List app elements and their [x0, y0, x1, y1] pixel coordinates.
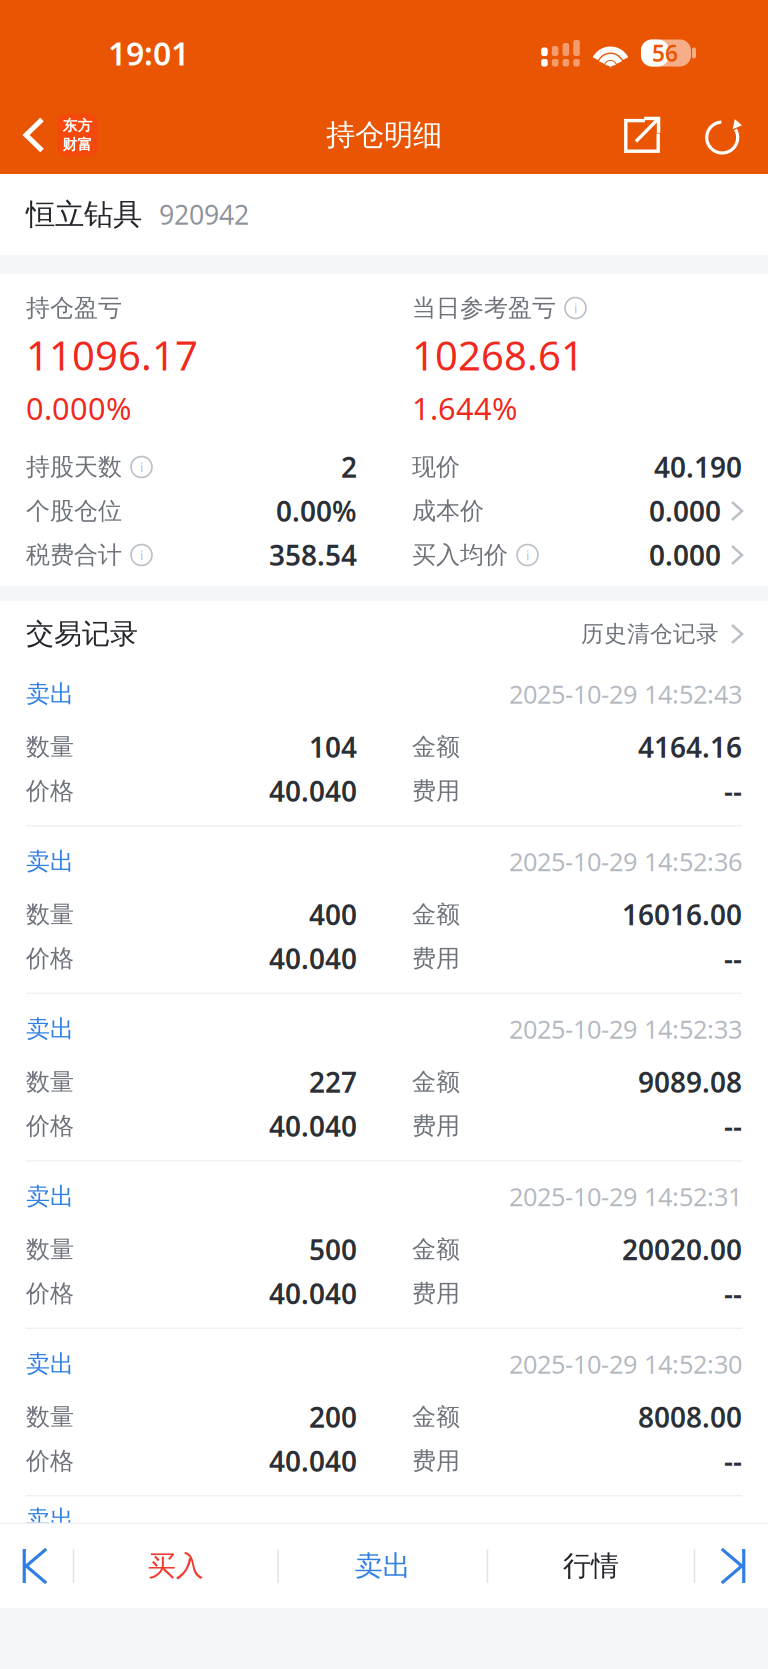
- button[interactable]: 上一只: [0, 1524, 73, 1608]
- staticText: --: [724, 772, 742, 810]
- staticText: 价格: [26, 944, 74, 973]
- staticText: 920942: [159, 197, 249, 232]
- staticText: 8008.00: [638, 1398, 742, 1436]
- staticText: 价格: [26, 1446, 74, 1476]
- staticText: --: [724, 940, 742, 977]
- staticText: 金额: [412, 732, 460, 762]
- staticText: 持股天数: [26, 452, 122, 482]
- staticText: 税费合计: [26, 540, 122, 570]
- button[interactable]: 分享: [607, 96, 677, 174]
- staticText: 2025-10-29 14:52:43: [509, 677, 742, 711]
- button[interactable]: 下一只: [695, 1524, 768, 1608]
- staticText: 金额: [412, 900, 460, 929]
- staticText: 500: [309, 1231, 357, 1268]
- staticText: 11096.17: [26, 328, 198, 381]
- staticText: 数量: [26, 1235, 74, 1264]
- button[interactable]: 买入: [74, 1524, 277, 1608]
- staticText: 0.00%: [276, 492, 357, 530]
- staticText: 当日参考盈亏: [412, 293, 556, 323]
- staticText: 卖出: [26, 1014, 74, 1044]
- staticText: 40.040: [269, 772, 357, 810]
- staticText: 2025-10-29 14:52:36: [509, 845, 742, 878]
- staticText: 数量: [26, 1067, 74, 1097]
- staticText: 227: [309, 1063, 357, 1101]
- staticText: 358.54: [269, 536, 357, 574]
- staticText: 0.000: [649, 536, 721, 574]
- staticText: 费用: [412, 1446, 460, 1476]
- staticText: 2025-10-29 14:52:33: [509, 1012, 742, 1046]
- staticText: 0.000: [649, 492, 721, 530]
- staticText: 东方: [62, 116, 92, 134]
- staticText: 费用: [412, 1111, 460, 1141]
- staticText: 行情: [563, 1549, 619, 1583]
- staticText: 历史清仓记录: [581, 620, 719, 648]
- staticText: 成本价: [412, 496, 484, 526]
- staticText: 4164.16: [638, 728, 742, 766]
- staticText: 卖出: [26, 679, 74, 709]
- staticText: 200: [309, 1398, 357, 1436]
- staticText: --: [724, 1275, 742, 1312]
- staticText: 56: [652, 38, 678, 68]
- staticText: 40.040: [269, 1107, 357, 1145]
- staticText: 交易记录: [26, 617, 138, 651]
- button[interactable]: 卖出: [279, 1524, 487, 1608]
- staticText: 恒立钻具: [26, 196, 142, 232]
- staticText: 价格: [26, 776, 74, 806]
- staticText: 40.190: [654, 448, 742, 486]
- staticText: 数量: [26, 1402, 74, 1432]
- staticText: 16016.00: [622, 896, 742, 933]
- staticText: 104: [309, 728, 357, 766]
- button[interactable]: 返回 东方财富: [0, 96, 110, 174]
- staticText: 19:01: [108, 32, 189, 74]
- staticText: 卖出: [26, 1349, 74, 1379]
- staticText: 财富: [62, 135, 92, 153]
- staticText: i: [140, 546, 143, 564]
- staticText: 持仓盈亏: [26, 293, 122, 323]
- staticText: i: [140, 458, 143, 476]
- staticText: 价格: [26, 1111, 74, 1141]
- staticText: 40.040: [269, 1442, 357, 1480]
- staticText: i: [574, 299, 577, 317]
- staticText: --: [724, 1442, 742, 1480]
- staticText: 40.040: [269, 940, 357, 977]
- staticText: 2: [341, 448, 357, 486]
- staticText: 1.644%: [412, 388, 517, 428]
- staticText: 10268.61: [412, 328, 584, 381]
- staticText: 金额: [412, 1235, 460, 1264]
- staticText: 卖出: [26, 1182, 74, 1211]
- staticText: 数量: [26, 732, 74, 762]
- staticText: 买入均价: [412, 540, 508, 570]
- staticText: 持仓明细: [326, 117, 442, 153]
- staticText: 买入: [148, 1549, 204, 1583]
- staticText: 费用: [412, 776, 460, 806]
- staticText: i: [526, 546, 529, 564]
- staticText: 2025-10-29 14:52:31: [509, 1180, 742, 1213]
- staticText: 个股仓位: [26, 496, 122, 526]
- staticText: 费用: [412, 1279, 460, 1308]
- staticText: 价格: [26, 1279, 74, 1308]
- staticText: 0.000%: [26, 388, 131, 428]
- staticText: 400: [309, 896, 357, 933]
- staticText: 9089.08: [638, 1063, 742, 1101]
- staticText: 费用: [412, 944, 460, 973]
- staticText: 金额: [412, 1067, 460, 1097]
- button[interactable]: 行情: [488, 1524, 694, 1608]
- staticText: 卖出: [26, 847, 74, 876]
- staticText: 卖出: [355, 1549, 411, 1583]
- button[interactable]: 历史清仓记录: [581, 601, 742, 667]
- staticText: 数量: [26, 900, 74, 929]
- staticText: 2025-10-29 14:52:30: [509, 1347, 742, 1381]
- staticText: 卖出: [26, 1504, 74, 1534]
- button[interactable]: 刷新: [689, 96, 759, 174]
- staticText: 金额: [412, 1402, 460, 1432]
- staticText: 20020.00: [622, 1231, 742, 1268]
- staticText: 40.040: [269, 1275, 357, 1312]
- staticText: --: [724, 1107, 742, 1145]
- staticText: 现价: [412, 452, 460, 482]
